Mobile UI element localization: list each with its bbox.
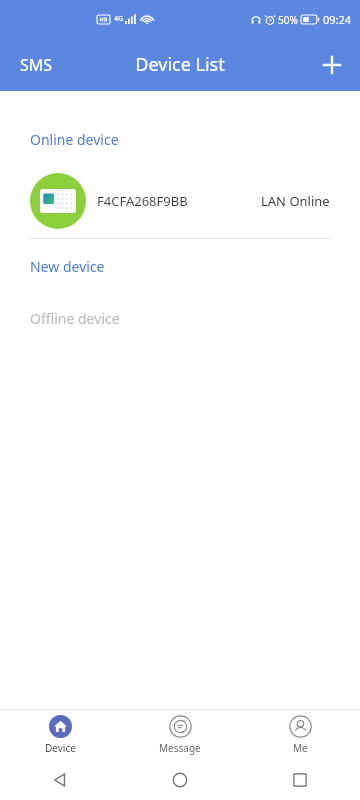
staticText: Me [293, 741, 308, 755]
button[interactable]: Me [240, 710, 360, 760]
staticText: 09:24 [323, 12, 352, 27]
staticText: Device List [135, 52, 225, 77]
staticText: SMS [20, 54, 53, 76]
button[interactable]: Device [0, 710, 120, 760]
staticText: New device [30, 257, 105, 276]
button[interactable]: F4CFA268F9BB [0, 173, 360, 229]
staticText: LAN Online [261, 192, 330, 210]
staticText: Online device [30, 130, 119, 149]
button[interactable]: Recent apps [240, 760, 360, 800]
button[interactable]: Message [120, 710, 240, 760]
button[interactable]: Home [120, 760, 240, 800]
button[interactable]: SMS [8, 46, 65, 84]
button[interactable]: Add device [310, 43, 354, 87]
button[interactable]: Back [0, 760, 120, 800]
staticText: Offline device [30, 309, 120, 328]
staticText: Message [159, 741, 201, 755]
staticText: F4CFA268F9BB [97, 192, 188, 210]
staticText: 50% [278, 13, 298, 27]
staticText: Device [45, 741, 76, 755]
staticText: 4G [114, 14, 124, 24]
